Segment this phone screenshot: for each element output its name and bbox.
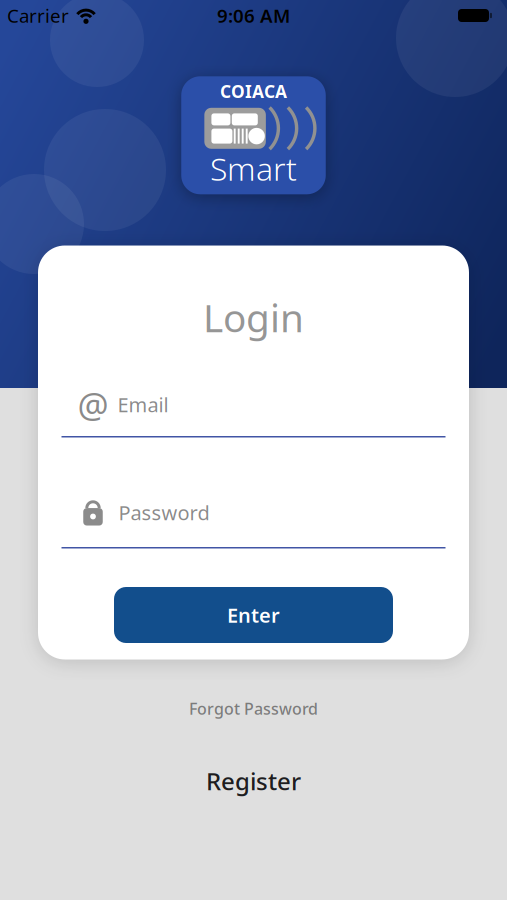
button[interactable]: Forgot Password xyxy=(189,698,318,719)
button[interactable]: Register xyxy=(206,765,301,797)
button[interactable]: @ xyxy=(38,389,469,419)
button[interactable]: Password xyxy=(38,498,469,526)
staticText: 9:06 AM xyxy=(217,3,290,28)
staticText: Enter xyxy=(227,602,280,628)
staticText: Email xyxy=(117,391,168,418)
button[interactable]: Enter xyxy=(114,587,393,643)
staticText: Forgot Password xyxy=(189,698,318,719)
staticText: Smart xyxy=(210,147,297,190)
staticText: Password xyxy=(118,499,209,526)
staticText: Register xyxy=(206,765,301,797)
staticText: @ xyxy=(77,381,108,427)
staticText: COIACA xyxy=(220,80,287,103)
staticText: Carrier xyxy=(7,3,69,28)
staticText: Login xyxy=(203,291,304,343)
